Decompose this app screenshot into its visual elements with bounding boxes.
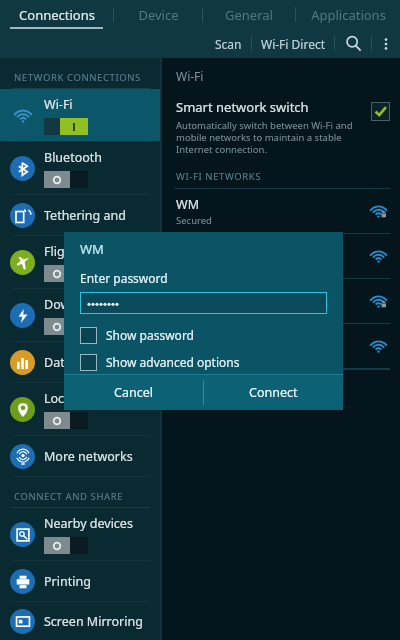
button[interactable]: Printing <box>0 561 160 601</box>
staticText: Wi-Fi <box>176 68 204 84</box>
staticText: Bluetooth <box>44 149 103 166</box>
staticText: Wi-Fi Direct <box>261 36 325 52</box>
staticText: General <box>225 6 273 24</box>
button[interactable] <box>162 279 400 323</box>
button[interactable]: WM <box>162 189 400 233</box>
button[interactable]: Applications <box>296 0 400 29</box>
staticText: Smart network switch <box>176 98 309 116</box>
staticText: Printing <box>44 573 91 590</box>
staticText: Location <box>44 390 95 407</box>
button[interactable]: WMGuest <box>162 234 400 278</box>
staticText: Automatically switch between Wi-Fi and m… <box>176 119 363 156</box>
button[interactable]: Device <box>114 0 202 29</box>
staticText: Download booster <box>44 296 153 313</box>
button[interactable]: General <box>203 0 295 29</box>
staticText: Applications <box>311 6 386 24</box>
button[interactable]: Wi-Fi <box>0 89 160 141</box>
staticText: Flight mode <box>44 243 115 260</box>
button[interactable] <box>80 292 327 314</box>
staticText: WM <box>176 196 199 213</box>
button[interactable]: Tethering and Mobi.. <box>0 195 160 235</box>
staticText: NETWORK CONNECTIONS <box>14 71 141 84</box>
button[interactable]: Wi-Fi Direct <box>252 29 334 58</box>
button[interactable]: Scan <box>206 29 251 58</box>
button[interactable]: Location <box>0 383 160 435</box>
button[interactable]: Screen Mirroring <box>0 602 160 640</box>
staticText: Connect <box>249 384 298 401</box>
staticText: More networks <box>44 448 133 465</box>
staticText: Device <box>138 6 179 24</box>
staticText: Connections <box>19 6 95 24</box>
button[interactable]: Search <box>335 29 371 58</box>
staticText: Screen Mirroring <box>44 613 143 630</box>
button[interactable]: Bluetooth <box>0 142 160 194</box>
button[interactable]: More options <box>372 29 400 58</box>
button[interactable]: Show password <box>64 323 343 347</box>
button[interactable]: Download booster <box>0 289 160 341</box>
staticText: WI-FI NETWORKS <box>176 170 262 183</box>
staticText: Wi-Fi <box>44 96 73 113</box>
button[interactable]: More networks <box>0 436 160 476</box>
staticText: Tethering and Mobi.. <box>44 207 154 224</box>
staticText: Data usage <box>44 354 111 371</box>
staticText: Scan <box>215 36 242 52</box>
staticText: Show advanced options <box>106 354 240 370</box>
button[interactable]: Nearby devices <box>0 508 160 560</box>
button[interactable]: Smart network switch <box>162 94 400 164</box>
staticText: Secured <box>176 214 212 227</box>
button[interactable]: Connect <box>204 375 343 410</box>
staticText: CONNECT AND SHARE <box>14 490 124 503</box>
button[interactable]: Cancel <box>64 375 203 410</box>
button[interactable]: Show advanced options <box>64 350 343 374</box>
staticText: WM <box>80 240 104 258</box>
staticText: Enter password <box>80 270 168 286</box>
button[interactable]: Connections <box>0 0 113 29</box>
button[interactable]: Data usage <box>0 342 160 382</box>
staticText: Cancel <box>114 384 153 401</box>
staticText: Nearby devices <box>44 515 133 532</box>
button[interactable] <box>162 324 400 368</box>
staticText: Show password <box>106 327 194 343</box>
button[interactable]: Flight mode <box>0 236 160 288</box>
